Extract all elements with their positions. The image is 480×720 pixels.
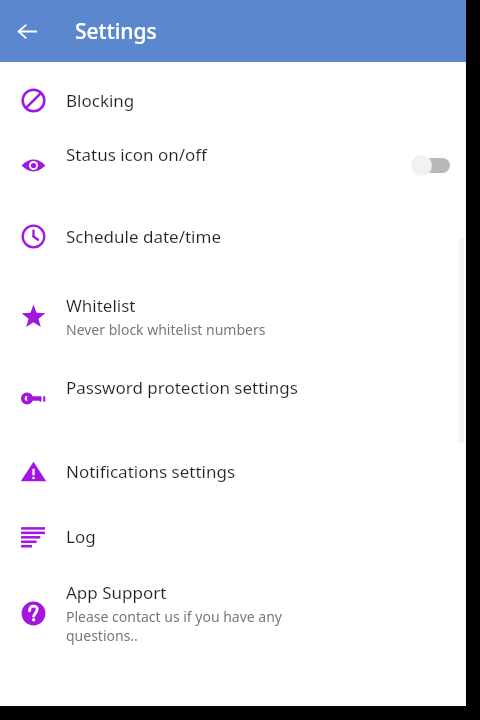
button[interactable]: Whitelist (0, 274, 466, 358)
button[interactable]: Notifications settings (0, 438, 466, 504)
staticText: Schedule date/time (66, 225, 221, 248)
button[interactable]: App Support (0, 568, 466, 658)
staticText: Never block whitelist numbers (66, 320, 266, 339)
staticText: Log (66, 525, 96, 548)
staticText: Please contact us if you have any questi… (66, 607, 283, 645)
staticText: Password protection settings (66, 376, 298, 399)
button[interactable]: Blocking (0, 68, 466, 132)
button[interactable]: Schedule date/time (0, 198, 466, 274)
staticText: Status icon on/off (66, 143, 208, 166)
staticText: Blocking (66, 89, 135, 112)
button[interactable]: Status icon toggle (390, 132, 466, 198)
staticText: Notifications settings (66, 460, 236, 483)
button[interactable]: Status icon on/off (0, 132, 466, 198)
button[interactable]: Password protection settings (0, 358, 466, 438)
button[interactable]: Log (0, 504, 466, 568)
staticText: App Support (66, 581, 167, 604)
staticText: Settings (75, 17, 157, 46)
staticText: Whitelist (66, 294, 136, 317)
button[interactable]: Back (10, 14, 44, 48)
